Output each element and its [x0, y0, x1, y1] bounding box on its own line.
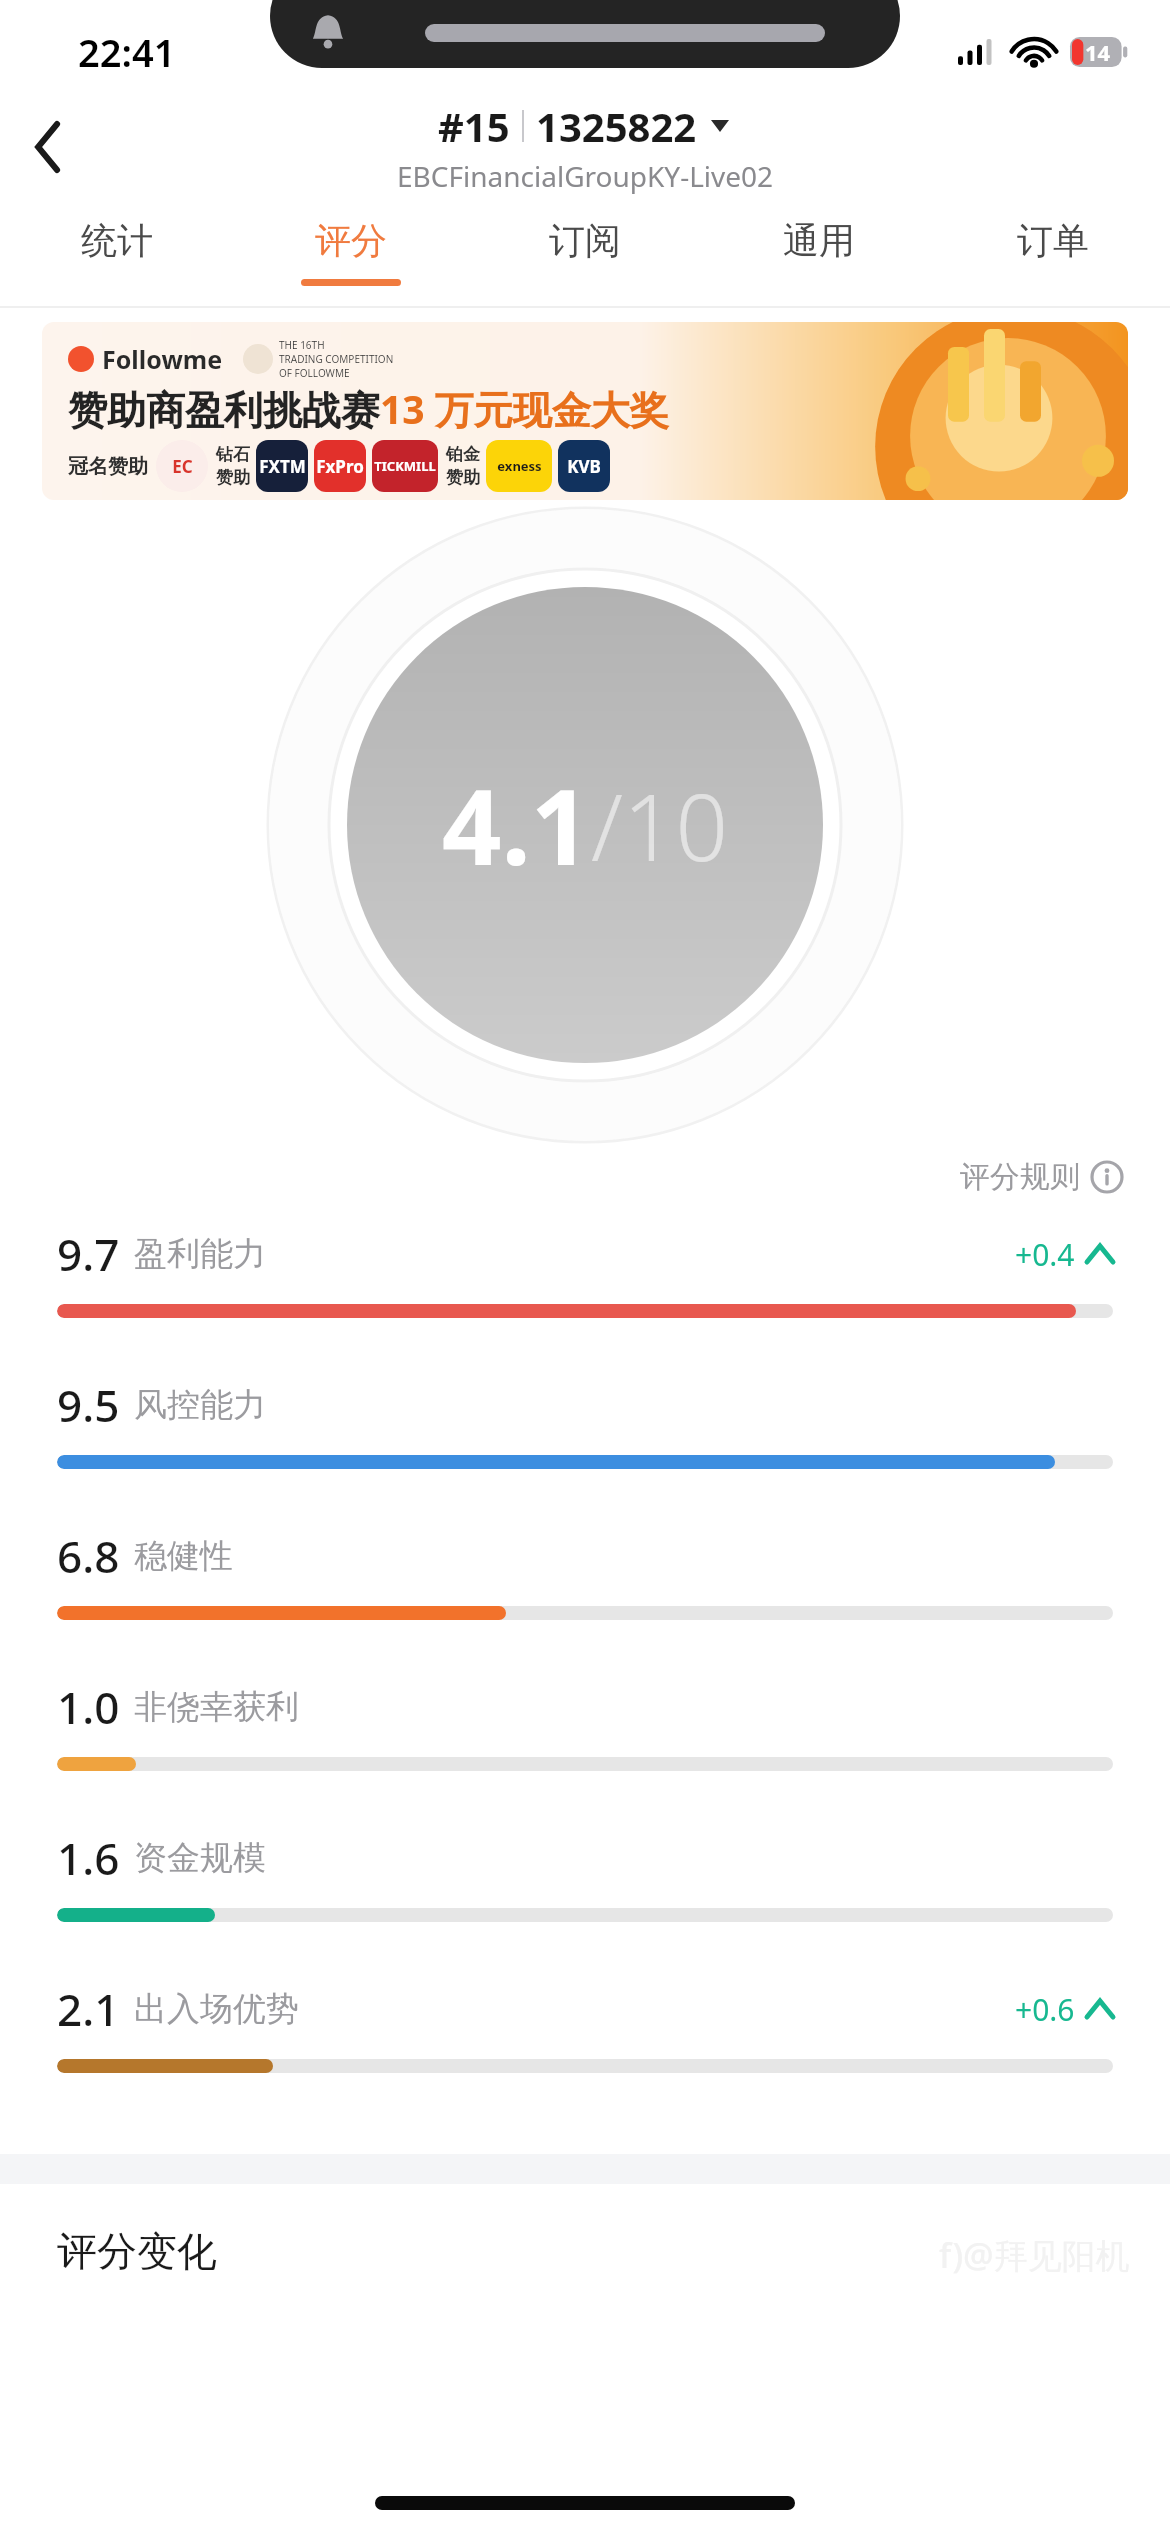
- staticText: 统计: [81, 218, 153, 263]
- staticText: 评分规则: [960, 1158, 1080, 1196]
- staticText: 4.1: [442, 754, 591, 896]
- button[interactable]: 评分: [234, 198, 468, 306]
- button[interactable]: 统计: [0, 198, 234, 306]
- staticText: 评分变化: [57, 2226, 217, 2276]
- button[interactable]: 1.0: [0, 1677, 1170, 1828]
- staticText: TICKMILL: [374, 457, 436, 475]
- staticText: 稳健性: [134, 1535, 233, 1577]
- staticText: 评分: [315, 218, 387, 263]
- staticText: 盈利能力: [134, 1233, 266, 1275]
- staticText: 1325822: [536, 99, 697, 153]
- staticText: 6.8: [57, 1526, 120, 1586]
- staticText: 22:41: [78, 26, 176, 78]
- staticText: 资金规模: [134, 1837, 266, 1879]
- staticText: 9.7: [57, 1224, 120, 1284]
- staticText: 订阅: [549, 218, 621, 263]
- staticText: 出入场优势: [134, 1988, 299, 2030]
- button[interactable]: 9.7: [0, 1224, 1170, 1375]
- staticText: #15: [438, 99, 510, 153]
- staticText: 13 万元现金大奖: [380, 382, 669, 435]
- button[interactable]: 订单: [936, 198, 1170, 306]
- staticText: Followme: [102, 342, 223, 376]
- staticText: EC: [172, 455, 193, 478]
- button[interactable]: 9.5: [0, 1375, 1170, 1526]
- staticText: +0.4: [1015, 1234, 1075, 1275]
- button[interactable]: 订阅: [468, 198, 702, 306]
- button[interactable]: Followme: [42, 322, 1128, 500]
- button[interactable]: 2.1: [0, 1979, 1170, 2130]
- button[interactable]: 1.6: [0, 1828, 1170, 1979]
- staticText: 订单: [1017, 218, 1089, 263]
- staticText: exness: [497, 457, 542, 475]
- button[interactable]: Back: [0, 99, 96, 195]
- button[interactable]: 通用: [702, 198, 936, 306]
- staticText: 9.5: [57, 1375, 120, 1435]
- staticText: 铂金 赞助: [446, 444, 480, 488]
- staticText: 通用: [783, 218, 855, 263]
- staticText: +0.6: [1015, 1989, 1075, 2030]
- staticText: FxPro: [316, 455, 364, 478]
- staticText: EBCFinancialGroupKY-Live02: [397, 157, 774, 195]
- staticText: 赞助商盈利挑战赛: [68, 386, 380, 435]
- staticText: 1.0: [57, 1677, 120, 1737]
- button[interactable]: Switch account: [707, 116, 733, 136]
- staticText: THE 16TH TRADING COMPETITION OF FOLLOWME: [279, 338, 394, 380]
- staticText: 2.1: [57, 1979, 120, 2039]
- staticText: 冠名赞助: [68, 454, 148, 479]
- button[interactable]: 评分规则: [952, 1150, 1132, 1204]
- staticText: 14: [1085, 37, 1111, 67]
- staticText: 风控能力: [134, 1384, 266, 1426]
- staticText: 1.6: [57, 1828, 120, 1888]
- staticText: f)@拜见阳机: [939, 2232, 1130, 2278]
- staticText: KVB: [567, 455, 601, 478]
- staticText: 钻石 赞助: [216, 444, 250, 488]
- button[interactable]: 6.8: [0, 1526, 1170, 1677]
- staticText: FXTM: [259, 455, 306, 478]
- staticText: 非侥幸获利: [134, 1686, 299, 1728]
- staticText: /10: [591, 763, 728, 888]
